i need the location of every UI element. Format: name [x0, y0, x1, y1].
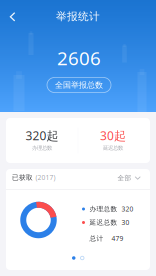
staticText: (2017) — [35, 173, 55, 182]
button[interactable]: 全部 — [118, 171, 141, 184]
staticText: 总计 — [89, 234, 103, 243]
staticText: 办理总数 — [32, 145, 52, 151]
staticText: 举报统计 — [56, 10, 100, 23]
button[interactable]: Back — [1, 4, 25, 30]
staticText: 延迟总数 — [89, 218, 117, 227]
staticText: 已获取 — [12, 173, 33, 182]
staticText: 479 — [111, 234, 123, 243]
staticText: 办理总数 — [89, 205, 117, 213]
staticText: 320 — [121, 205, 133, 213]
staticText: 2606 — [57, 46, 101, 70]
staticText: 延迟总数 — [103, 145, 123, 151]
staticText: 30起 — [100, 127, 126, 143]
staticText: 320起 — [25, 127, 58, 143]
staticText: 全部 — [117, 174, 131, 182]
staticText: 30 — [121, 218, 129, 227]
staticText: 全国举报总数 — [55, 80, 103, 90]
